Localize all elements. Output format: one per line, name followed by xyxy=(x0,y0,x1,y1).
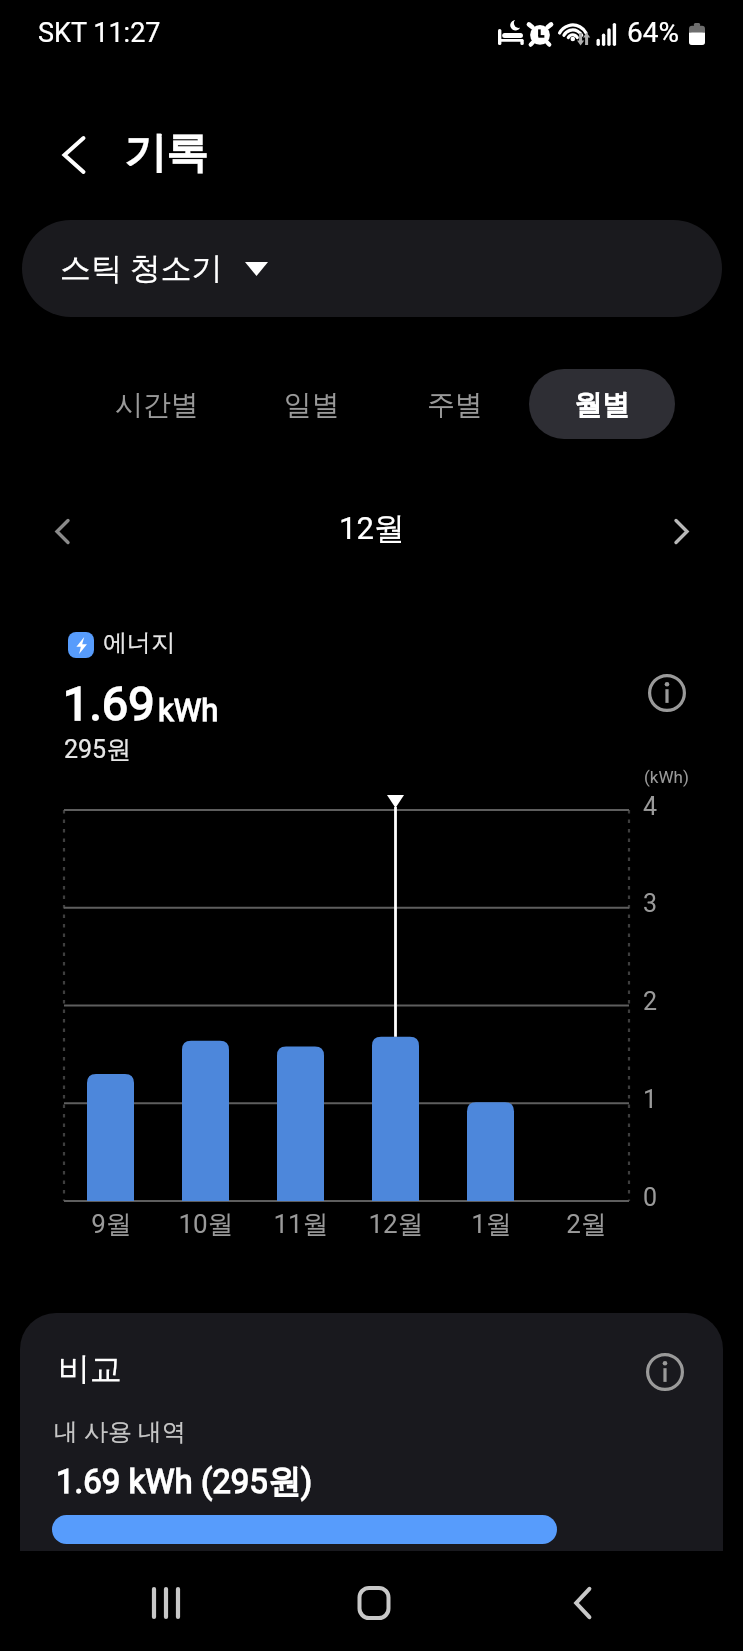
staticText: SKT 11:27 xyxy=(38,17,161,49)
staticText: (kWh) xyxy=(644,767,689,787)
staticText: 10월 xyxy=(178,1208,234,1241)
staticText: 2월 xyxy=(566,1208,607,1241)
staticText: 12월 xyxy=(339,509,405,548)
staticText: 3 xyxy=(643,889,658,918)
staticText: 일별 xyxy=(284,387,340,422)
button[interactable]: Back xyxy=(543,1563,623,1643)
staticText: 9월 xyxy=(91,1208,132,1241)
button[interactable]: Energy information xyxy=(646,672,687,713)
button[interactable]: 시간별 xyxy=(84,369,230,439)
button[interactable]: Back xyxy=(43,124,105,186)
staticText: 295원 xyxy=(64,734,132,765)
button[interactable]: Next month xyxy=(656,506,706,556)
staticText: 시간별 xyxy=(115,387,199,422)
staticText: 월별 xyxy=(574,387,630,422)
button[interactable]: 스틱 청소기 xyxy=(22,220,722,317)
staticText: 기록 xyxy=(124,127,208,180)
staticText: kWh xyxy=(158,692,219,728)
staticText: 1.69 xyxy=(63,676,155,731)
staticText: 에너지 xyxy=(103,628,175,658)
staticText: 비교 xyxy=(58,1349,122,1389)
button[interactable]: Recent apps xyxy=(126,1563,206,1643)
button[interactable]: Previous month xyxy=(37,506,87,556)
staticText: 64% xyxy=(627,16,679,49)
staticText: 주별 xyxy=(427,387,483,422)
staticText: 11월 xyxy=(273,1208,329,1241)
button[interactable]: Comparison information xyxy=(645,1352,684,1391)
staticText: 내 사용 내역 xyxy=(54,1417,186,1447)
staticText: 2 xyxy=(643,987,658,1016)
staticText: 12월 xyxy=(368,1208,424,1241)
staticText: 4 xyxy=(643,792,658,821)
button[interactable]: Home xyxy=(334,1563,414,1643)
staticText: 스틱 청소기 xyxy=(60,249,223,288)
button[interactable] xyxy=(20,1313,723,1551)
button[interactable]: 월별 xyxy=(529,369,675,439)
staticText: 0 xyxy=(643,1183,658,1212)
button[interactable]: 일별 xyxy=(239,369,385,439)
staticText: 1 xyxy=(643,1085,658,1114)
staticText: 1.69 kWh (295원) xyxy=(56,1461,313,1503)
staticText: 1월 xyxy=(471,1208,512,1241)
button[interactable]: 주별 xyxy=(382,369,528,439)
